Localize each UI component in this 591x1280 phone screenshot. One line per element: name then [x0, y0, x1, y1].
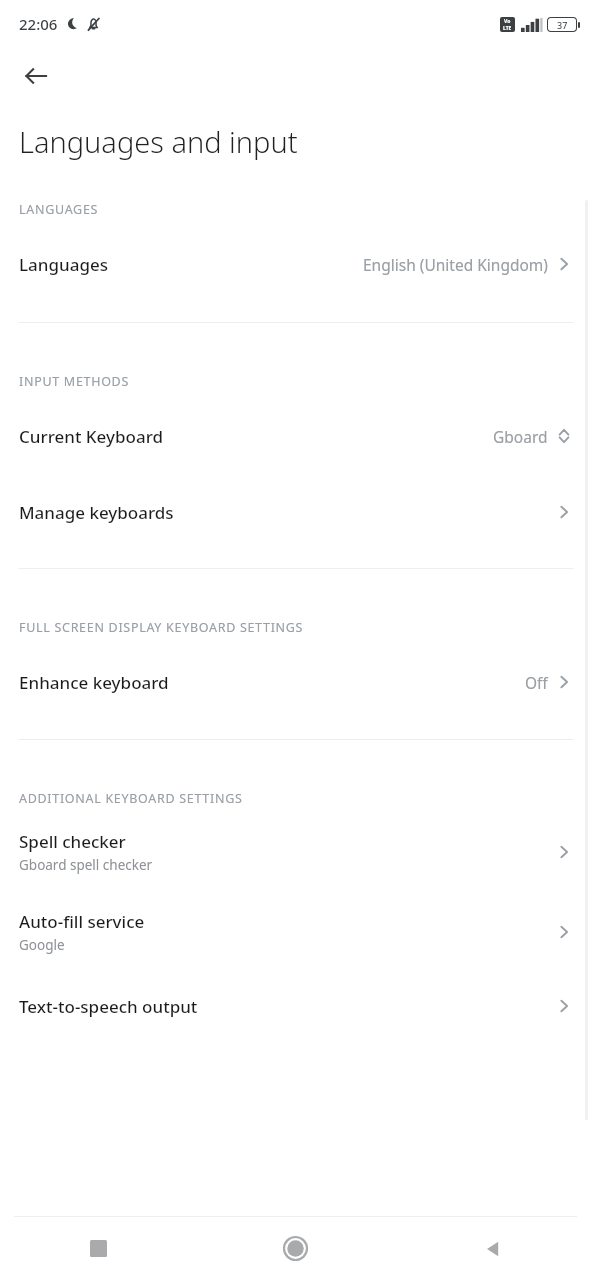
staticText: Spell checker — [19, 830, 126, 853]
staticText: ADDITIONAL KEYBOARD SETTINGS — [19, 790, 591, 807]
staticText: Manage keyboards — [19, 501, 174, 524]
button[interactable]: Manage keyboards — [0, 484, 591, 540]
button[interactable]: Home — [197, 1217, 394, 1280]
button[interactable]: Current Keyboard — [0, 408, 591, 464]
staticText: English (United Kingdom) — [363, 254, 548, 275]
staticText: LANGUAGES — [19, 201, 591, 218]
staticText: Languages and input — [19, 122, 591, 161]
staticText: Gboard spell checker — [19, 856, 153, 874]
staticText: Text-to-speech output — [19, 995, 198, 1018]
staticText: Enhance keyboard — [19, 671, 169, 694]
staticText: Off — [525, 672, 548, 693]
button[interactable]: Spell checker — [0, 821, 591, 883]
button[interactable]: Enhance keyboard — [0, 654, 591, 710]
button[interactable]: Languages — [0, 236, 591, 292]
button[interactable]: Recent apps — [0, 1217, 197, 1280]
staticText: INPUT METHODS — [19, 373, 591, 390]
staticText: Google — [19, 936, 65, 954]
staticText: Vo — [504, 18, 511, 25]
staticText: 22:06 — [19, 14, 58, 34]
button[interactable]: Back — [394, 1217, 591, 1280]
staticText: Current Keyboard — [19, 425, 164, 448]
staticText: Auto-fill service — [19, 910, 145, 933]
button[interactable]: Navigate up — [12, 52, 60, 100]
staticText: LTE — [503, 25, 512, 32]
staticText: Gboard — [493, 426, 548, 447]
button[interactable]: Text-to-speech output — [0, 981, 591, 1031]
staticText: 37 — [557, 19, 568, 31]
staticText: Languages — [19, 253, 108, 276]
button[interactable]: Auto-fill service — [0, 901, 591, 963]
staticText: FULL SCREEN DISPLAY KEYBOARD SETTINGS — [19, 619, 591, 636]
